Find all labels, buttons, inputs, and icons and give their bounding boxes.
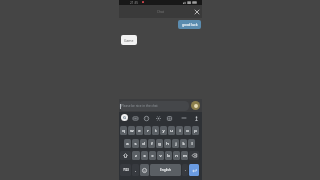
staticText: English [160,168,171,172]
button[interactable]: m [181,151,188,160]
staticText: g [158,141,161,147]
button[interactable]: Tool 3 [154,114,162,122]
button[interactable]: b [165,151,172,160]
staticText: y [162,128,165,134]
staticText: a [126,141,129,147]
staticText: f [151,141,153,147]
staticText: Chat [157,10,164,14]
button[interactable]: More options [180,114,188,122]
button[interactable]: English [150,164,181,176]
button[interactable]: Shift [120,151,131,160]
staticText: z [135,153,137,159]
button[interactable]: Backspace [189,151,199,160]
staticText: e [138,128,141,134]
button[interactable]: Close [193,8,201,16]
button[interactable]: Please be nice in the chat [119,101,189,111]
staticText: k [182,141,185,147]
button[interactable]: x [141,151,148,160]
staticText: n [175,153,178,159]
button[interactable]: e [136,126,143,135]
button[interactable]: i [176,126,183,135]
button[interactable]: n [173,151,180,160]
staticText: Please be nice in the chat [121,104,158,108]
button[interactable]: w [128,126,135,135]
staticText: s [134,141,137,147]
staticText: G [123,115,127,121]
staticText: o [186,128,189,134]
button[interactable]: a [124,139,131,148]
button[interactable]: Tool 1 [131,114,139,122]
button[interactable]: ?123 [120,164,131,176]
staticText: u [170,128,173,134]
staticText: i [179,128,181,134]
button[interactable]: Send [191,101,200,110]
button[interactable]: u [168,126,175,135]
staticText: b [167,153,170,159]
button[interactable]: h [164,139,171,148]
button[interactable]: c [149,151,156,160]
button[interactable]: Tool 2 [142,114,150,122]
button[interactable]: f [148,139,155,148]
button[interactable]: Emoji [140,164,149,176]
staticText: c [151,153,154,159]
button[interactable]: Google [121,114,128,121]
button[interactable]: k [180,139,187,148]
staticText: q [122,128,125,134]
button[interactable]: , [132,164,139,176]
staticText: , [135,168,136,172]
staticText: p [194,128,197,134]
staticText: l [191,141,193,147]
staticText: 21:35 [130,1,139,5]
button[interactable]: t [152,126,159,135]
button[interactable]: y [160,126,167,135]
button[interactable]: Enter [189,164,199,176]
staticText: ?123 [123,168,129,172]
button[interactable]: z [132,151,140,160]
staticText: t [155,128,157,134]
staticText: m [183,153,187,159]
button[interactable]: Voice input [192,114,200,122]
button[interactable]: . [182,164,188,176]
button[interactable]: r [144,126,151,135]
button[interactable]: s [132,139,139,148]
button[interactable]: p [192,126,199,135]
staticText: r [147,128,149,134]
staticText: d [142,141,145,147]
button[interactable]: o [184,126,191,135]
staticText: h [166,141,169,147]
button[interactable]: q [120,126,127,135]
staticText: w [130,128,134,134]
button[interactable]: Tool 4 [165,114,173,122]
staticText: Game [124,38,134,43]
staticText: x [143,153,146,159]
button[interactable]: g [156,139,163,148]
button[interactable]: v [157,151,164,160]
button[interactable]: j [172,139,179,148]
button[interactable]: Game [121,35,137,45]
staticText: j [175,141,177,147]
button[interactable]: d [140,139,147,148]
staticText: good luck [182,22,198,27]
staticText: . [185,168,186,172]
button[interactable]: l [188,139,195,148]
staticText: v [159,153,162,159]
button[interactable]: good luck [178,20,201,29]
